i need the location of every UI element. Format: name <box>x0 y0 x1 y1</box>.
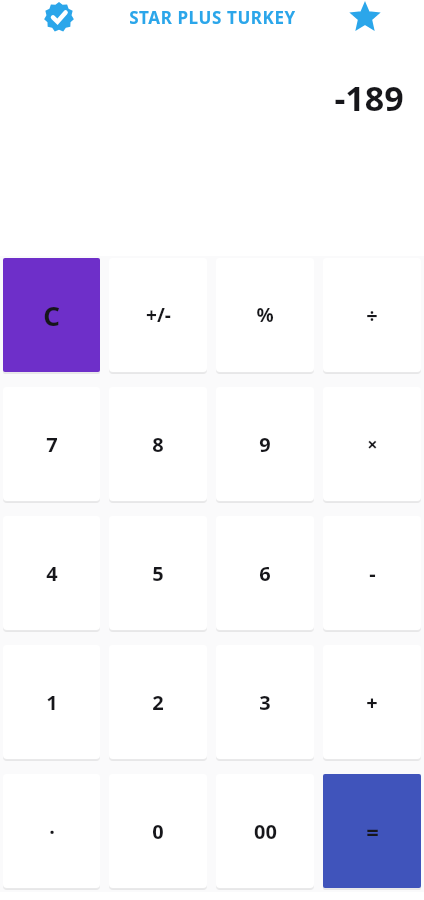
button[interactable]: 1 <box>3 645 100 759</box>
staticText: - <box>369 560 376 587</box>
button[interactable]: 6 <box>216 516 314 630</box>
staticText: 6 <box>259 560 271 587</box>
button[interactable]: 00 <box>216 774 314 888</box>
staticText: 00 <box>254 818 277 845</box>
button[interactable]: 9 <box>216 387 314 501</box>
button[interactable]: C <box>3 258 100 372</box>
staticText: 4 <box>46 560 58 587</box>
staticText: C <box>43 298 60 333</box>
button[interactable]: 0 <box>109 774 207 888</box>
button[interactable]: STAR PLUS TURKEY <box>76 6 348 29</box>
button[interactable]: ÷ <box>323 258 421 372</box>
button[interactable]: × <box>323 387 421 501</box>
button[interactable]: + <box>323 645 421 759</box>
button[interactable]: 3 <box>216 645 314 759</box>
staticText: 3 <box>259 689 271 716</box>
staticText: = <box>366 816 379 846</box>
staticText: + <box>366 689 378 716</box>
staticText: 2 <box>152 689 164 716</box>
staticText: · <box>49 818 55 845</box>
staticText: 0 <box>152 818 164 845</box>
button[interactable]: Verified <box>42 0 76 34</box>
button[interactable]: 7 <box>3 387 100 501</box>
button[interactable]: 5 <box>109 516 207 630</box>
button[interactable]: - <box>323 516 421 630</box>
staticText: ÷ <box>366 302 378 329</box>
staticText: -189 <box>334 75 404 121</box>
button[interactable]: 8 <box>109 387 207 501</box>
staticText: 9 <box>259 431 271 458</box>
staticText: 8 <box>152 431 164 458</box>
button[interactable]: +/- <box>109 258 207 372</box>
staticText: 7 <box>46 431 58 458</box>
staticText: 5 <box>152 560 164 587</box>
button[interactable]: · <box>3 774 100 888</box>
staticText: × <box>367 432 378 457</box>
button[interactable]: % <box>216 258 314 372</box>
button[interactable]: 2 <box>109 645 207 759</box>
staticText: STAR PLUS TURKEY <box>129 6 296 29</box>
staticText: +/- <box>146 302 171 328</box>
staticText: 1 <box>46 689 58 716</box>
staticText: % <box>256 302 274 328</box>
button[interactable]: Favourite <box>348 0 382 34</box>
button[interactable]: 4 <box>3 516 100 630</box>
button[interactable]: = <box>323 774 421 888</box>
